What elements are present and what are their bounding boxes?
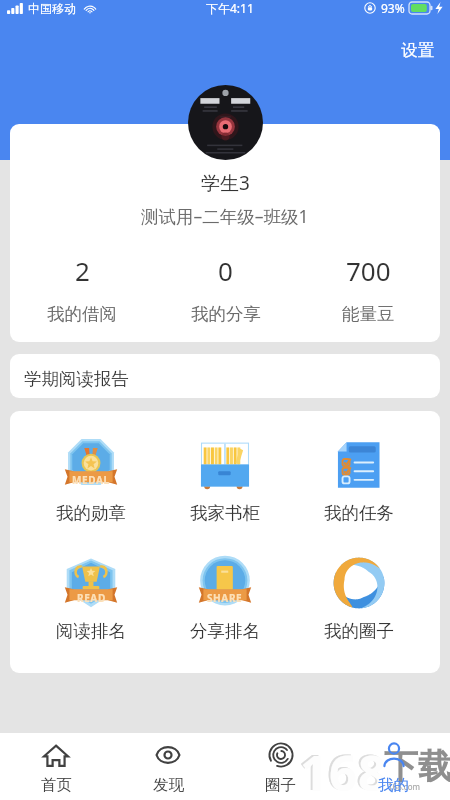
button[interactable]: 圈子 — [224, 733, 337, 800]
button[interactable]: READ — [24, 556, 158, 642]
staticText: 我的任务 — [324, 502, 394, 524]
button[interactable]: MEDAL — [24, 438, 158, 524]
staticText: 我的分享 — [191, 303, 261, 325]
staticText: 发现 — [153, 775, 184, 795]
button[interactable]: 2 — [10, 253, 154, 325]
staticText: 93% — [381, 0, 405, 16]
button[interactable]: 发现 — [112, 733, 224, 800]
staticText: 下载 — [384, 745, 450, 788]
button[interactable]: Profile photo — [188, 85, 263, 160]
staticText: MEDAL — [72, 473, 110, 487]
staticText: 能量豆 — [342, 303, 395, 325]
button[interactable]: 设置 — [393, 36, 442, 65]
button[interactable]: 学期阅读报告 — [10, 354, 440, 398]
staticText: 学生3 — [201, 170, 250, 196]
staticText: 我家书柜 — [190, 502, 260, 524]
staticText: 我的 — [378, 775, 409, 795]
staticText: 168 — [300, 739, 388, 800]
staticText: 圈子 — [265, 775, 296, 795]
staticText: 下午4:11 — [206, 0, 254, 16]
button[interactable]: 700 — [297, 253, 440, 325]
staticText: 中国移动 — [28, 1, 76, 16]
button[interactable]: 首页 — [0, 733, 112, 800]
staticText: 700 — [346, 253, 391, 288]
button[interactable]: 我的任务 — [292, 438, 426, 524]
staticText: 测试用–二年级–班级1 — [141, 204, 309, 228]
staticText: 分享排名 — [190, 620, 260, 642]
staticText: 我的圈子 — [324, 620, 394, 642]
button[interactable]: 0 — [154, 253, 297, 325]
staticText: 首页 — [41, 775, 72, 795]
button[interactable]: 我家书柜 — [158, 438, 292, 524]
staticText: 168.com — [388, 781, 421, 792]
staticText: 我的勋章 — [56, 502, 126, 524]
staticText: 学期阅读报告 — [24, 368, 129, 390]
staticText: 168 — [298, 738, 386, 800]
staticText: 2 — [75, 253, 90, 288]
staticText: 设置 — [401, 40, 434, 61]
button[interactable]: SHARE — [158, 556, 292, 642]
staticText: SHARE — [207, 591, 243, 605]
button[interactable]: 我的 — [337, 733, 450, 800]
staticText: 我的借阅 — [47, 303, 117, 325]
staticText: READ — [77, 591, 106, 605]
button[interactable]: 我的圈子 — [292, 556, 426, 642]
staticText: 0 — [218, 253, 233, 288]
staticText: 阅读排名 — [56, 620, 126, 642]
